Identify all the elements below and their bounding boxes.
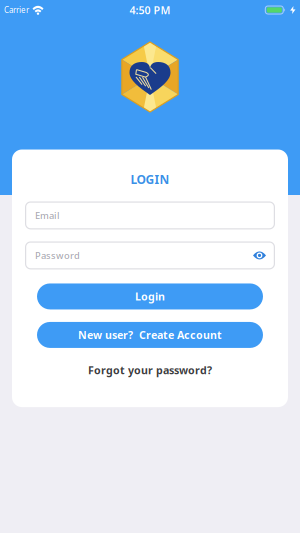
staticText: New user? Create Account [78, 328, 222, 342]
button[interactable]: Forgot your password? [88, 363, 212, 377]
staticText: Carrier [4, 5, 29, 15]
staticText: Login [135, 289, 165, 304]
button[interactable]: New user? Create Account [37, 322, 263, 348]
button[interactable]: Password text field [25, 241, 275, 269]
button[interactable]: Email text field [25, 201, 275, 229]
button[interactable]: Show password [253, 251, 266, 260]
staticText: LOGIN [130, 171, 169, 187]
staticText: Password [35, 249, 80, 262]
staticText: Forgot your password? [88, 363, 212, 377]
staticText: Email [35, 209, 60, 222]
button[interactable]: Login [37, 283, 263, 309]
staticText: 4:50 PM [129, 3, 170, 17]
